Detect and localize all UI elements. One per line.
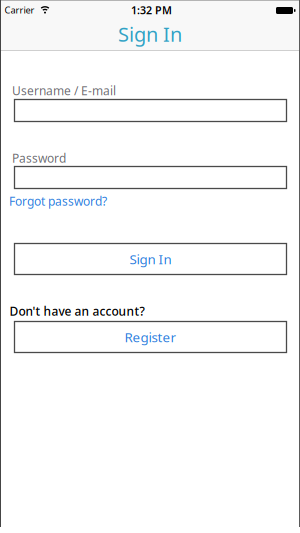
button[interactable]: Sign In [14,243,286,274]
button[interactable]: Username / E-mail [14,99,286,121]
staticText: Password [12,150,66,166]
staticText: Carrier [4,4,34,16]
staticText: Don't have an account? [9,303,144,319]
button[interactable]: Password [14,166,286,188]
staticText: Sign In [129,250,171,268]
staticText: Sign In [118,21,182,47]
button[interactable]: Forgot password? [9,193,107,209]
staticText: Register [124,328,176,346]
staticText: Forgot password? [9,193,107,209]
staticText: Username / E-mail [12,82,116,98]
button[interactable]: Register [14,321,286,352]
staticText: 1:32 PM [131,3,172,17]
